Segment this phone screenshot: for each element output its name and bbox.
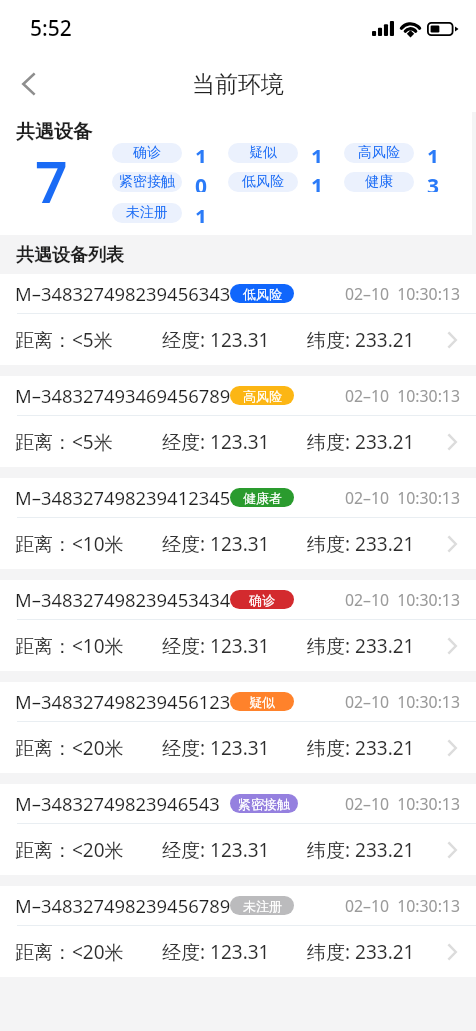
staticText: 低风险 — [242, 173, 284, 191]
staticText: 距离：<20米 — [15, 837, 124, 863]
button[interactable]: M–34832749823946543 — [0, 784, 476, 875]
staticText: 紧密接触 — [119, 173, 175, 191]
staticText: 未注册 — [243, 898, 282, 914]
staticText: 距离：<10米 — [15, 633, 124, 659]
staticText: 0 — [195, 172, 208, 192]
button[interactable]: 高风险 — [344, 143, 414, 163]
button[interactable]: M–348327498239412345 — [0, 478, 476, 569]
staticText: 纬度: 233.21 — [307, 327, 415, 353]
staticText: 02–10 10:30:13 — [345, 487, 460, 509]
staticText: 02–10 10:30:13 — [345, 385, 460, 407]
staticText: 距离：<20米 — [15, 939, 124, 965]
staticText: 02–10 10:30:13 — [345, 895, 460, 917]
staticText: 纬度: 233.21 — [307, 429, 415, 455]
staticText: 02–10 10:30:13 — [345, 283, 460, 305]
staticText: 确诊 — [249, 592, 275, 608]
staticText: 02–10 10:30:13 — [345, 793, 460, 815]
staticText: 1 — [311, 143, 324, 163]
staticText: 距离：<5米 — [15, 327, 113, 353]
staticText: 经度: 123.31 — [162, 633, 270, 659]
staticText: 距离：<5米 — [15, 429, 113, 455]
staticText: 距离：<20米 — [15, 735, 124, 761]
staticText: 未注册 — [126, 204, 168, 222]
staticText: 纬度: 233.21 — [307, 735, 415, 761]
staticText: 7 — [35, 142, 68, 220]
staticText: M–348327498239412345 — [15, 485, 230, 510]
staticText: M–348327498239456123 — [15, 689, 230, 714]
staticText: 低风险 — [243, 286, 282, 302]
staticText: 5:52 — [30, 14, 72, 43]
button[interactable]: 疑似 — [228, 143, 298, 163]
staticText: 经度: 123.31 — [162, 531, 270, 557]
staticText: 紧密接触 — [238, 796, 290, 812]
staticText: 经度: 123.31 — [162, 735, 270, 761]
staticText: 健康者 — [243, 490, 282, 506]
staticText: M–348327493469456789 — [15, 383, 230, 408]
staticText: 当前环境 — [192, 70, 284, 99]
button[interactable]: 低风险 — [228, 172, 298, 192]
staticText: 疑似 — [249, 144, 277, 162]
staticText: 1 — [427, 143, 440, 163]
staticText: 02–10 10:30:13 — [345, 589, 460, 611]
staticText: 经度: 123.31 — [162, 327, 270, 353]
button[interactable]: 确诊 — [112, 143, 182, 163]
button[interactable]: M–348327498239456343 — [0, 274, 476, 365]
staticText: 高风险 — [243, 388, 282, 404]
staticText: 共遇设备列表 — [16, 244, 124, 267]
staticText: 经度: 123.31 — [162, 837, 270, 863]
staticText: 纬度: 233.21 — [307, 939, 415, 965]
staticText: 健康 — [365, 173, 393, 191]
staticText: 疑似 — [249, 694, 275, 710]
staticText: 纬度: 233.21 — [307, 531, 415, 557]
staticText: 1 — [195, 203, 208, 223]
staticText: 高风险 — [358, 144, 400, 162]
button[interactable]: 未注册 — [112, 203, 182, 223]
staticText: 共遇设备 — [16, 120, 92, 144]
button[interactable]: 紧密接触 — [112, 172, 182, 192]
button[interactable]: M–348327498239456123 — [0, 682, 476, 773]
button[interactable]: M–348327498239456789 — [0, 886, 476, 977]
button[interactable]: 健康 — [344, 172, 414, 192]
staticText: M–348327498239453434 — [15, 587, 230, 612]
button[interactable]: M–348327498239453434 — [0, 580, 476, 671]
staticText: 1 — [311, 172, 324, 192]
staticText: 纬度: 233.21 — [307, 837, 415, 863]
button[interactable]: M–348327493469456789 — [0, 376, 476, 467]
staticText: M–34832749823946543 — [15, 791, 220, 816]
staticText: 经度: 123.31 — [162, 939, 270, 965]
staticText: M–348327498239456343 — [15, 281, 230, 306]
staticText: 经度: 123.31 — [162, 429, 270, 455]
staticText: 纬度: 233.21 — [307, 633, 415, 659]
staticText: 3 — [427, 172, 440, 192]
staticText: M–348327498239456789 — [15, 893, 230, 918]
staticText: 1 — [195, 143, 208, 163]
staticText: 02–10 10:30:13 — [345, 691, 460, 713]
button[interactable]: Back — [0, 56, 56, 112]
staticText: 确诊 — [133, 144, 161, 162]
staticText: 距离：<10米 — [15, 531, 124, 557]
